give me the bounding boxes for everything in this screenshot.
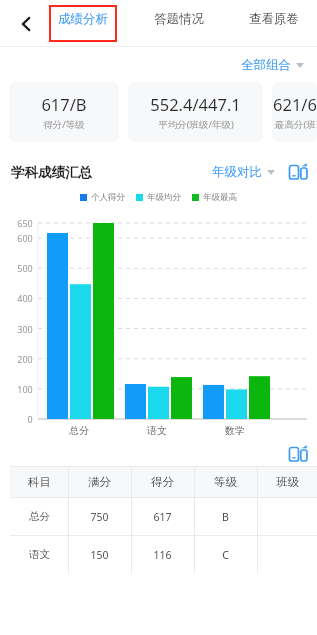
staticText: 552.4/447.1 (150, 93, 241, 115)
staticText: 617 (153, 510, 172, 524)
staticText: 600 (17, 232, 33, 244)
staticText: 500 (17, 262, 33, 274)
staticText: 等级 (214, 475, 237, 489)
staticText: 0 (27, 413, 33, 425)
staticText: 平均分(班级/年级) (158, 118, 234, 131)
staticText: 个人得分 (91, 192, 125, 203)
staticText: 得分/等级 (43, 118, 85, 131)
staticText: 年级最高 (203, 192, 237, 203)
staticText: 学科成绩汇总 (11, 164, 92, 181)
staticText: 年级对比 (212, 164, 262, 180)
staticText: 答题情况 (154, 11, 204, 27)
staticText: 200 (17, 353, 33, 365)
button[interactable]: 552.4/447.1 (128, 82, 263, 142)
staticText: 300 (17, 323, 33, 335)
button[interactable]: 答题情况 (145, 0, 213, 37)
staticText: 科目 (28, 475, 51, 489)
staticText: 116 (153, 548, 172, 562)
staticText: 查看原卷 (249, 11, 299, 27)
button[interactable]: 成绩分析 (49, 0, 117, 37)
staticText: 总分 (69, 424, 89, 437)
staticText: 满分 (88, 475, 111, 489)
button[interactable]: 617/B (9, 82, 119, 142)
staticText: 最高分(班 (275, 118, 316, 131)
button[interactable]: Back (9, 7, 43, 41)
staticText: 语文 (147, 424, 167, 437)
staticText: 成绩分析 (58, 11, 108, 27)
staticText: 100 (17, 383, 33, 395)
button[interactable]: 全部组合 (239, 57, 306, 73)
staticText: 总分 (29, 510, 50, 523)
button[interactable]: 621/6 (272, 82, 317, 142)
staticText: 年级均分 (147, 192, 181, 203)
staticText: 617/B (41, 93, 87, 115)
button[interactable]: 年级对比 (210, 164, 277, 180)
staticText: 语文 (29, 548, 50, 561)
staticText: 得分 (151, 475, 174, 489)
staticText: C (222, 548, 229, 562)
staticText: 650 (17, 217, 33, 229)
button[interactable]: 查看原卷 (240, 0, 308, 37)
staticText: 数学 (225, 424, 245, 437)
staticText: 全部组合 (241, 57, 291, 73)
staticText: B (222, 510, 229, 524)
staticText: 621/6 (273, 93, 317, 115)
button[interactable]: Rotate screen (286, 160, 310, 184)
button[interactable]: Rotate screen (286, 442, 310, 466)
staticText: 150 (90, 548, 109, 562)
staticText: 750 (90, 510, 109, 524)
staticText: 班级 (276, 475, 299, 489)
staticText: 400 (17, 292, 33, 304)
